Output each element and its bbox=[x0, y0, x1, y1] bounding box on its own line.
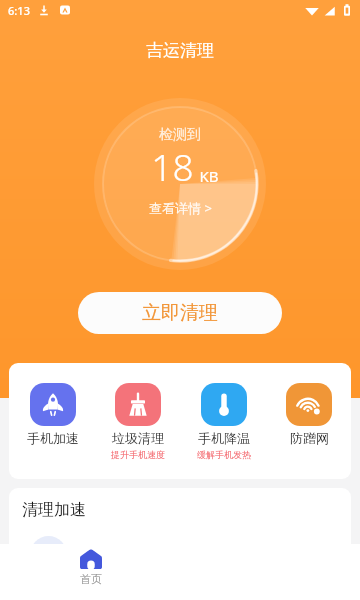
staticText: 信息检测 bbox=[80, 546, 136, 564]
staticText: 手机降温 bbox=[198, 430, 250, 446]
staticText: 清理加速 bbox=[22, 500, 86, 520]
staticText: 缓解手机发热 bbox=[197, 449, 251, 460]
staticText: 手机加速 bbox=[27, 430, 79, 446]
button[interactable]: 查看详情 > bbox=[149, 199, 212, 217]
staticText: 防蹭网 bbox=[290, 430, 329, 446]
button[interactable]: 垃圾清理 bbox=[109, 383, 167, 460]
button[interactable]: 首页 bbox=[68, 547, 114, 588]
staticText: KB bbox=[199, 166, 219, 186]
staticText: 立即清理 bbox=[142, 301, 218, 325]
staticText: 18 bbox=[151, 141, 194, 191]
staticText: 提升手机速度 bbox=[111, 449, 165, 460]
staticText: 垃圾清理 bbox=[112, 430, 164, 446]
button[interactable]: 手机加速 bbox=[24, 383, 82, 446]
staticText: 检测到 bbox=[159, 126, 201, 144]
button[interactable]: 手机降温 bbox=[195, 383, 253, 460]
staticText: 首页 bbox=[80, 572, 102, 586]
button[interactable]: 立即清理 bbox=[78, 292, 282, 334]
button[interactable]: 防蹭网 bbox=[280, 383, 338, 446]
staticText: 6:13 bbox=[8, 3, 30, 18]
staticText: 吉运清理 bbox=[146, 40, 214, 61]
